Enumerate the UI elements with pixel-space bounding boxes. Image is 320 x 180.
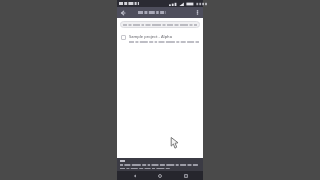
button[interactable]: Home xyxy=(152,171,168,180)
button[interactable]: Recent apps xyxy=(178,171,194,180)
button[interactable]: Back xyxy=(127,171,143,180)
button[interactable] xyxy=(128,7,192,18)
staticText: Sample project - Alpha xyxy=(129,34,172,39)
button[interactable]: Select item xyxy=(117,32,203,46)
button[interactable]: Select item xyxy=(121,35,126,40)
button[interactable]: More options xyxy=(192,7,203,18)
button[interactable] xyxy=(120,21,200,28)
button[interactable]: Navigate up xyxy=(117,7,128,18)
button[interactable] xyxy=(117,158,203,171)
